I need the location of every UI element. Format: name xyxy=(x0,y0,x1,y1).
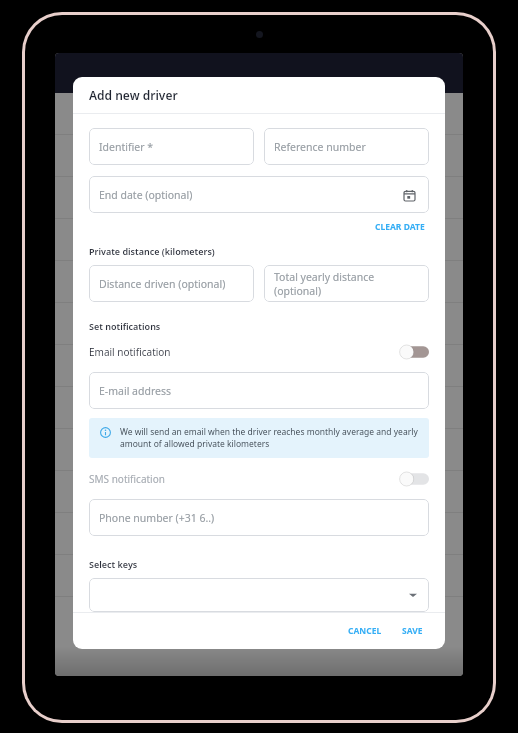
button[interactable]: SMS notification xyxy=(89,470,429,488)
button[interactable]: SMS notification toggle xyxy=(399,471,429,487)
staticText: Total yearly distance (optional) xyxy=(274,270,419,298)
button[interactable]: Phone number (+31 6..) xyxy=(89,499,429,536)
button[interactable]: Email notification xyxy=(89,343,429,361)
staticText: We will send an email when the driver re… xyxy=(120,426,418,450)
button[interactable]: SAVE xyxy=(396,622,429,640)
staticText: Select keys xyxy=(89,558,138,570)
staticText: Private distance (kilometers) xyxy=(89,245,215,257)
staticText: SMS notification xyxy=(89,472,165,486)
staticText: Set notifications xyxy=(89,320,161,332)
button[interactable]: Select keys dropdown xyxy=(89,578,429,612)
button[interactable]: Email notification toggle xyxy=(399,344,429,360)
button[interactable]: Total yearly distance (optional) xyxy=(264,265,429,302)
button[interactable]: End date (optional) xyxy=(89,176,429,213)
staticText: Phone number (+31 6..) xyxy=(99,511,215,525)
staticText: CLEAR DATE xyxy=(375,221,425,233)
button[interactable]: E-mail address xyxy=(89,372,429,409)
button[interactable]: Pick date xyxy=(399,185,419,205)
staticText: E-mail address xyxy=(99,384,171,398)
staticText: CANCEL xyxy=(348,625,382,637)
staticText: Identifier * xyxy=(99,140,154,154)
staticText: Distance driven (optional) xyxy=(99,277,226,291)
button[interactable]: CANCEL xyxy=(342,622,388,640)
button[interactable]: Reference number xyxy=(264,128,429,165)
button[interactable]: Distance driven (optional) xyxy=(89,265,254,302)
button[interactable]: Identifier * xyxy=(89,128,254,165)
staticText: End date (optional) xyxy=(99,188,193,202)
staticText: Email notification xyxy=(89,345,171,359)
staticText: Reference number xyxy=(274,140,366,154)
staticText: SAVE xyxy=(402,625,423,637)
button[interactable]: CLEAR DATE xyxy=(371,219,429,235)
staticText: Add new driver xyxy=(89,87,178,103)
